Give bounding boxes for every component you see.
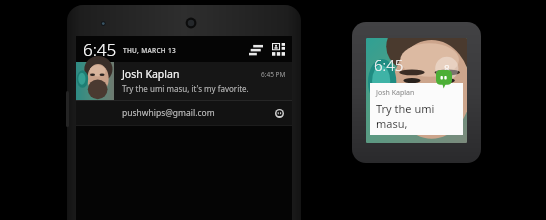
button[interactable]: pushwhips@gmail.com [122, 101, 284, 125]
staticText: 8 [444, 62, 450, 76]
staticText: THU, MARCH 13 [123, 46, 176, 55]
staticText: Josh Kaplan [122, 67, 261, 81]
button[interactable]: Josh Kaplan [76, 62, 292, 100]
button[interactable]: Hangouts [275, 109, 284, 118]
staticText: 6:45 [374, 55, 404, 75]
staticText: pushwhips@gmail.com [122, 107, 275, 119]
button[interactable]: Josh Kaplan [376, 88, 459, 135]
staticText: 6:45 [83, 38, 117, 61]
staticText: Try the umi masu, [376, 101, 459, 131]
button[interactable]: Quick settings [272, 43, 285, 56]
staticText: Josh Kaplan [376, 88, 415, 98]
button[interactable]: Hangouts [436, 71, 452, 87]
button[interactable]: Signal [249, 43, 263, 55]
staticText: Try the umi masu, it's my favorite. [122, 83, 249, 94]
staticText: 6:45 PM [261, 70, 286, 79]
